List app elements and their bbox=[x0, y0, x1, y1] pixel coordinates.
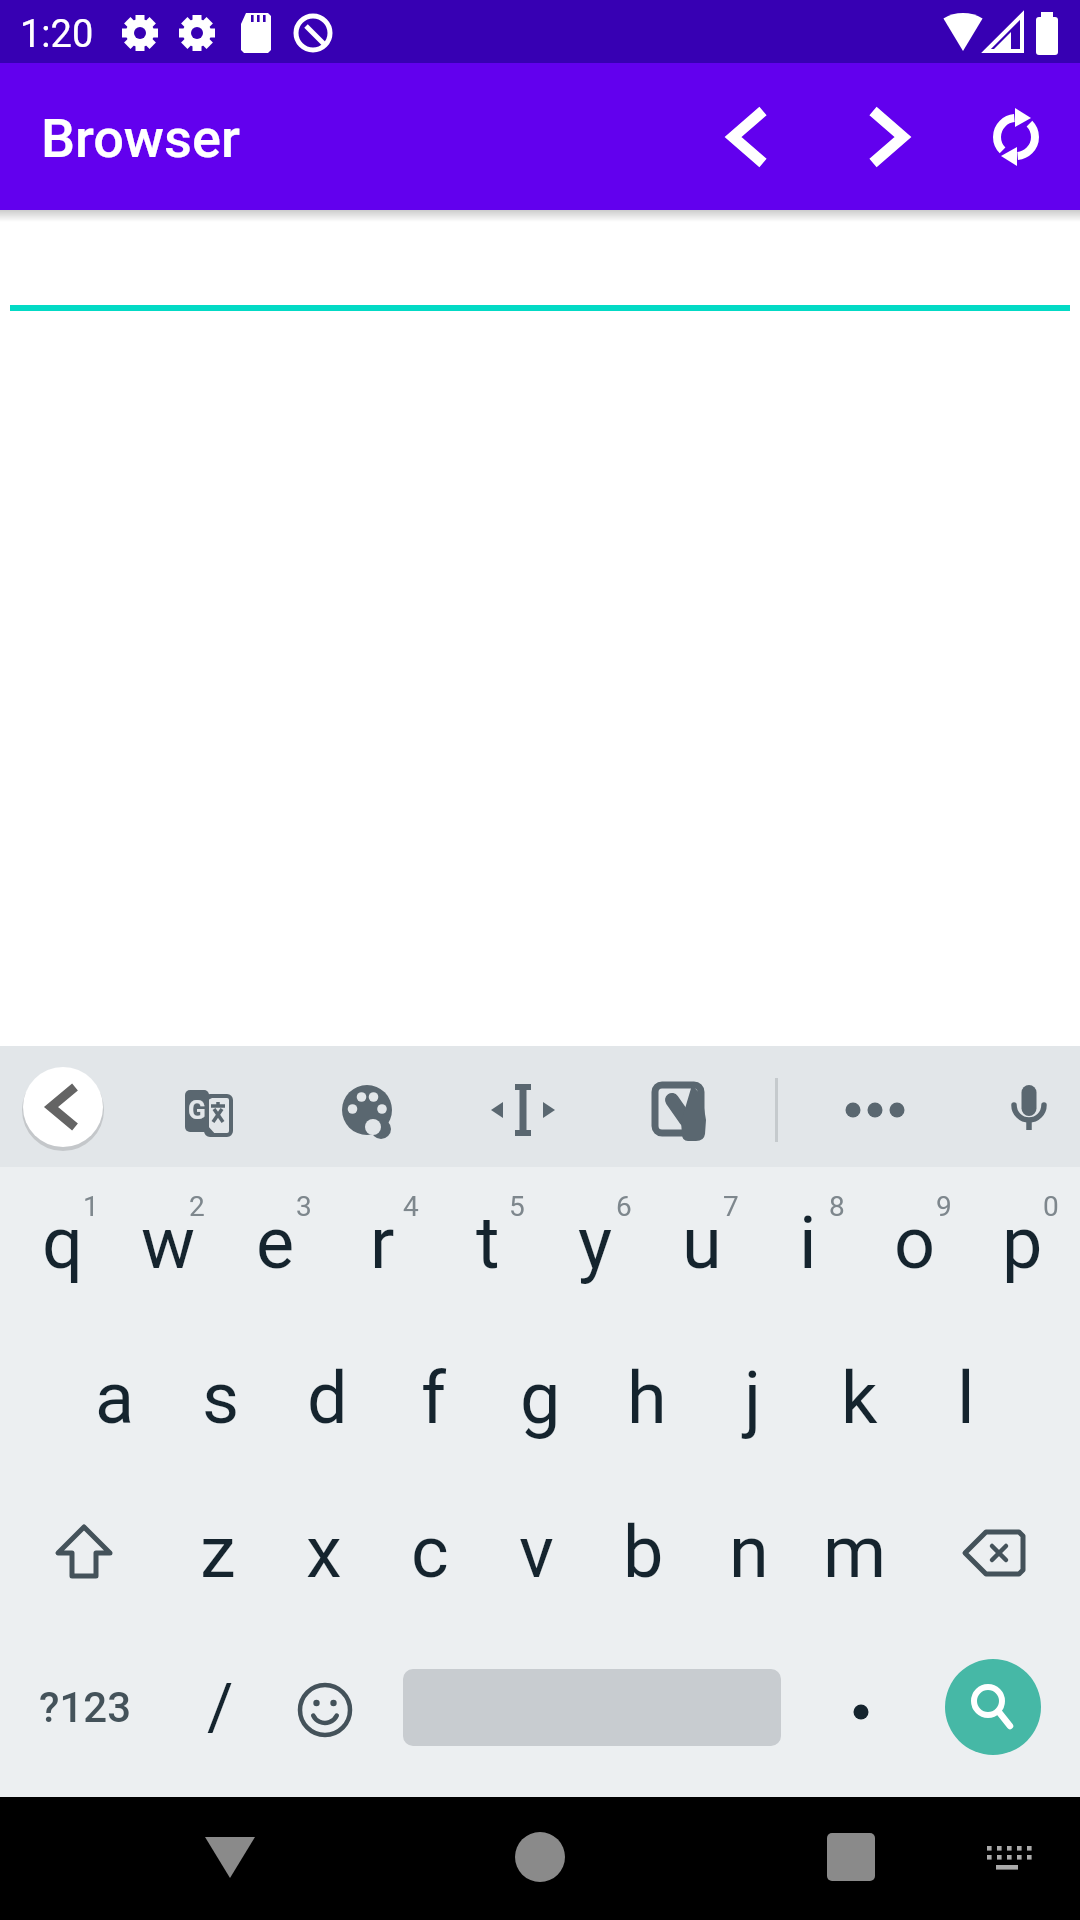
button[interactable]: o bbox=[862, 1168, 968, 1318]
staticText: 4 bbox=[403, 1190, 419, 1223]
button[interactable]: v bbox=[483, 1477, 589, 1627]
button[interactable]: x bbox=[271, 1477, 377, 1627]
button[interactable]: l bbox=[913, 1323, 1019, 1473]
button[interactable] bbox=[962, 1812, 1052, 1902]
button[interactable] bbox=[483, 1070, 563, 1150]
button[interactable] bbox=[945, 1659, 1041, 1755]
button[interactable] bbox=[796, 1802, 906, 1912]
button[interactable]: m bbox=[802, 1477, 908, 1627]
staticText: y bbox=[578, 1201, 613, 1285]
button[interactable] bbox=[275, 1660, 375, 1760]
button[interactable] bbox=[640, 1070, 720, 1150]
button[interactable]: q bbox=[9, 1168, 115, 1318]
staticText: v bbox=[519, 1510, 554, 1594]
button[interactable]: d bbox=[274, 1323, 380, 1473]
button[interactable] bbox=[968, 89, 1064, 185]
staticText: u bbox=[682, 1201, 722, 1285]
staticText: Browser bbox=[41, 107, 240, 170]
button[interactable] bbox=[835, 1070, 915, 1150]
staticText: 3 bbox=[296, 1190, 312, 1223]
staticText: r bbox=[370, 1201, 395, 1285]
button[interactable]: r bbox=[329, 1168, 435, 1318]
button[interactable] bbox=[168, 1070, 248, 1150]
button[interactable] bbox=[942, 1500, 1048, 1606]
staticText: w bbox=[141, 1201, 196, 1285]
button[interactable]: p bbox=[969, 1168, 1075, 1318]
staticText: l bbox=[957, 1356, 975, 1440]
staticText: f bbox=[421, 1356, 447, 1440]
staticText: p bbox=[1002, 1201, 1043, 1285]
staticText: G bbox=[188, 1095, 206, 1125]
staticText: h bbox=[627, 1356, 667, 1440]
button[interactable] bbox=[840, 89, 936, 185]
staticText: q bbox=[42, 1201, 83, 1285]
button[interactable]: n bbox=[696, 1477, 802, 1627]
button[interactable]: y bbox=[542, 1168, 648, 1318]
staticText: d bbox=[307, 1356, 348, 1440]
staticText: t bbox=[476, 1201, 500, 1285]
staticText: 1:20 bbox=[20, 12, 94, 57]
button[interactable] bbox=[327, 1071, 407, 1151]
button[interactable]: g bbox=[487, 1323, 593, 1473]
staticText: ?123 bbox=[39, 1683, 132, 1732]
staticText: 9 bbox=[936, 1190, 952, 1223]
button[interactable] bbox=[31, 1500, 137, 1606]
staticText: j bbox=[744, 1356, 762, 1440]
button[interactable]: j bbox=[700, 1323, 806, 1473]
button[interactable]: z bbox=[165, 1477, 271, 1627]
button[interactable] bbox=[811, 1662, 911, 1762]
staticText: z bbox=[200, 1510, 236, 1594]
button[interactable]: i bbox=[755, 1168, 861, 1318]
button[interactable]: b bbox=[590, 1477, 696, 1627]
button[interactable]: ?123 bbox=[20, 1647, 150, 1767]
staticText: o bbox=[894, 1201, 936, 1285]
button[interactable]: h bbox=[594, 1323, 700, 1473]
button[interactable] bbox=[175, 1802, 285, 1912]
button[interactable]: / bbox=[167, 1642, 273, 1772]
staticText: e bbox=[256, 1201, 295, 1285]
button[interactable]: c bbox=[377, 1477, 483, 1627]
button[interactable]: a bbox=[62, 1323, 168, 1473]
staticText: 5 bbox=[509, 1190, 525, 1223]
staticText: 6 bbox=[616, 1190, 632, 1223]
staticText: c bbox=[411, 1510, 449, 1594]
staticText: m bbox=[823, 1510, 887, 1594]
staticText: s bbox=[202, 1356, 240, 1440]
button[interactable]: s bbox=[168, 1323, 274, 1473]
staticText: i bbox=[799, 1201, 817, 1285]
button[interactable]: t bbox=[435, 1168, 541, 1318]
staticText: 0 bbox=[1043, 1190, 1059, 1223]
button[interactable] bbox=[20, 1064, 106, 1150]
staticText: a bbox=[95, 1356, 135, 1440]
staticText: k bbox=[841, 1356, 878, 1440]
staticText: x bbox=[306, 1510, 342, 1594]
button[interactable]: u bbox=[649, 1168, 755, 1318]
staticText: g bbox=[520, 1356, 561, 1440]
staticText: 8 bbox=[829, 1190, 845, 1223]
button[interactable] bbox=[700, 89, 796, 185]
button[interactable]: f bbox=[381, 1323, 487, 1473]
staticText: / bbox=[207, 1670, 234, 1745]
button[interactable]: e bbox=[222, 1168, 328, 1318]
staticText: 2 bbox=[189, 1190, 205, 1223]
staticText: 7 bbox=[723, 1190, 739, 1223]
button[interactable] bbox=[485, 1802, 595, 1912]
staticText: n bbox=[729, 1510, 769, 1594]
button[interactable]: k bbox=[806, 1323, 912, 1473]
button[interactable] bbox=[989, 1068, 1069, 1148]
staticText: b bbox=[623, 1510, 664, 1594]
staticText: 1 bbox=[83, 1190, 99, 1223]
button[interactable]: w bbox=[115, 1168, 221, 1318]
